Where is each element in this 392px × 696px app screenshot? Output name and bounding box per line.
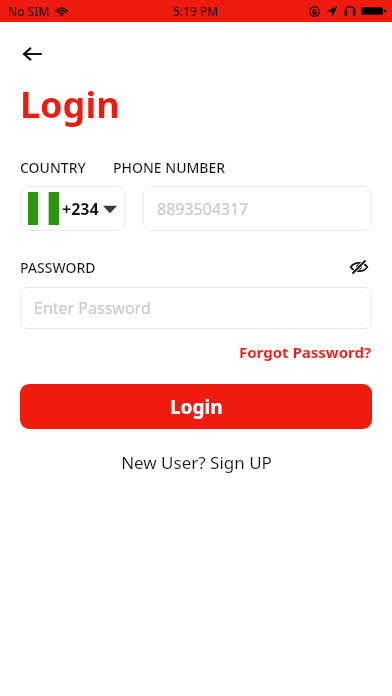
button[interactable]: New User? Sign UP bbox=[121, 451, 272, 474]
button[interactable]: +234 bbox=[20, 186, 125, 231]
button[interactable]: Login bbox=[20, 384, 372, 429]
staticText: PHONE NUMBER bbox=[113, 158, 226, 177]
button[interactable]: Show password bbox=[346, 254, 372, 280]
staticText: 5:19 PM bbox=[173, 3, 219, 19]
staticText: No SIM bbox=[8, 3, 50, 19]
staticText: PASSWORD bbox=[20, 258, 96, 277]
button[interactable]: 8893504317 bbox=[143, 186, 372, 231]
staticText: COUNTRY bbox=[20, 158, 86, 177]
button[interactable]: Back bbox=[12, 34, 52, 74]
staticText: +234 bbox=[62, 198, 99, 220]
staticText: Login bbox=[170, 394, 223, 420]
staticText: Enter Password bbox=[34, 297, 151, 319]
button[interactable]: Forgot Password? bbox=[239, 342, 372, 362]
staticText: Login bbox=[20, 80, 120, 129]
button[interactable]: Enter Password bbox=[20, 287, 372, 329]
staticText: 8893504317 bbox=[157, 198, 249, 220]
